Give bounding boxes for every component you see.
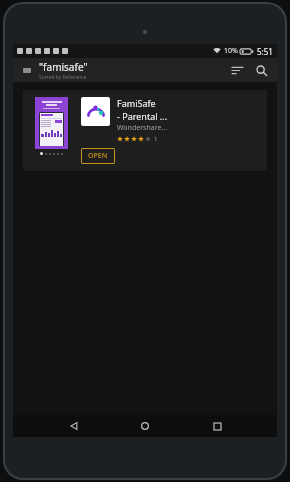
- staticText: FamiSafe: [117, 97, 156, 109]
- button[interactable]: OPEN: [81, 148, 115, 164]
- staticText: Sorted by Relevance: [39, 74, 87, 81]
- staticText: "famisafe": [39, 60, 88, 74]
- button[interactable]: Search: [249, 58, 273, 82]
- staticText: Wondershare...: [117, 123, 168, 133]
- button[interactable]: Recent apps: [206, 415, 228, 437]
- button[interactable]: Home: [134, 415, 156, 437]
- staticText: 5:51: [257, 46, 273, 57]
- staticText: 1: [154, 135, 158, 143]
- staticText: - Parental ...: [117, 110, 168, 122]
- button[interactable]: Back: [63, 415, 85, 437]
- button[interactable]: Sort: [225, 58, 249, 82]
- staticText: 10%: [224, 46, 238, 56]
- staticText: OPEN: [88, 151, 108, 161]
- button[interactable]: FamiSafe: [23, 90, 267, 171]
- button[interactable]: Menu: [19, 62, 35, 78]
